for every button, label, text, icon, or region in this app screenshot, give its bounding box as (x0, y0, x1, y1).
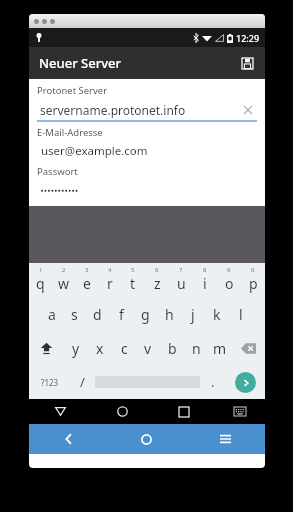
button[interactable]: l (229, 297, 253, 331)
staticText: 8 (203, 266, 207, 274)
staticText: 4 (108, 266, 112, 274)
button[interactable]: 3 (75, 263, 98, 297)
staticText: m (213, 339, 227, 358)
button[interactable]: h (157, 297, 181, 331)
staticText: Passwort (37, 165, 78, 178)
button[interactable]: y (63, 331, 88, 365)
staticText: j (191, 305, 195, 324)
staticText: Protonet Server (37, 84, 108, 97)
button[interactable]: 8 (193, 263, 217, 297)
button[interactable]: . (200, 365, 225, 399)
button[interactable]: Zurück (29, 424, 107, 454)
staticText: 6 (155, 266, 159, 274)
staticText: n (192, 339, 201, 358)
staticText: p (249, 274, 258, 293)
staticText: r (107, 274, 113, 293)
staticText: s (71, 305, 78, 324)
button[interactable]: Umschalt (29, 331, 63, 365)
staticText: f (119, 305, 124, 324)
button[interactable]: Zurück (29, 399, 91, 424)
button[interactable]: 5 (121, 263, 145, 297)
button[interactable]: k (205, 297, 229, 331)
staticText: g (141, 305, 150, 324)
button[interactable]: Startbildschirm (91, 399, 153, 424)
staticText: y (72, 339, 80, 358)
button[interactable]: Rücktaste (232, 331, 265, 365)
button[interactable]: Übersicht (153, 399, 215, 424)
staticText: . (211, 373, 215, 391)
staticText: 5 (131, 266, 135, 274)
button[interactable]: c (112, 331, 136, 365)
button[interactable]: v (136, 331, 160, 365)
button[interactable]: Weiter (235, 372, 256, 393)
staticText: k (213, 305, 221, 324)
staticText: q (36, 274, 45, 293)
button[interactable]: g (133, 297, 157, 331)
staticText: h (165, 305, 174, 324)
button[interactable]: 9 (217, 263, 241, 297)
staticText: o (225, 274, 234, 293)
staticText: b (168, 339, 177, 358)
staticText: u (177, 274, 186, 293)
button[interactable]: Speichern (234, 50, 260, 76)
staticText: z (154, 274, 161, 293)
button[interactable]: / (70, 365, 95, 399)
button[interactable]: user@example.com (37, 142, 257, 159)
staticText: w (58, 274, 70, 293)
button[interactable]: servername.protonet.info (37, 99, 257, 120)
staticText: a (48, 305, 56, 324)
button[interactable]: a (40, 297, 63, 331)
staticText: 9 (227, 266, 231, 274)
staticText: 3 (85, 266, 89, 274)
button[interactable]: Löschen (239, 101, 257, 119)
button[interactable]: 2 (52, 263, 75, 297)
button[interactable]: m (208, 331, 232, 365)
other: USB (35, 32, 43, 43)
button[interactable]: x (88, 331, 112, 365)
staticText: E-Mail-Adresse (37, 126, 103, 139)
button[interactable]: 4 (98, 263, 121, 297)
button[interactable]: Tastatur ausblenden (215, 399, 265, 424)
staticText: / (80, 373, 85, 391)
button[interactable]: f (109, 297, 133, 331)
staticText: 0 (251, 266, 255, 274)
staticText: user@example.com (41, 143, 148, 159)
button[interactable]: Menü (186, 424, 265, 454)
button[interactable] (37, 184, 257, 196)
staticText: 7 (179, 266, 183, 274)
staticText: c (121, 339, 128, 358)
button[interactable]: d (86, 297, 109, 331)
staticText: e (83, 274, 91, 293)
staticText: Neuer Server (39, 54, 121, 72)
button[interactable]: n (184, 331, 208, 365)
staticText: x (96, 339, 104, 358)
staticText: v (144, 339, 152, 358)
button[interactable]: 6 (145, 263, 169, 297)
staticText: servername.protonet.info (40, 102, 186, 118)
button[interactable]: Start (107, 424, 186, 454)
staticText: i (203, 274, 207, 293)
button[interactable]: ?123 (29, 365, 70, 399)
button[interactable]: 7 (169, 263, 193, 297)
button[interactable]: 1 (29, 263, 52, 297)
staticText: 1 (39, 266, 43, 274)
staticText: l (239, 305, 243, 324)
staticText: d (93, 305, 102, 324)
staticText: 12:29 (236, 32, 260, 44)
staticText: 2 (62, 266, 66, 274)
button[interactable]: s (63, 297, 86, 331)
button[interactable]: b (160, 331, 184, 365)
button[interactable]: 0 (241, 263, 265, 297)
staticText: t (130, 274, 136, 293)
staticText: ?123 (41, 377, 59, 388)
button[interactable]: j (181, 297, 205, 331)
